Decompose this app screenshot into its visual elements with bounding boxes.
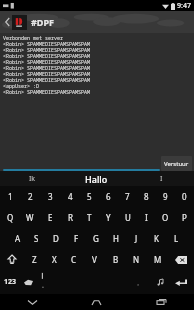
staticText: 4 bbox=[68, 191, 73, 202]
button[interactable]: J bbox=[126, 228, 146, 249]
staticText: I bbox=[160, 174, 163, 184]
staticText: <Robin> SPAMMEDIESPAMSPAMSPAM bbox=[3, 53, 91, 59]
button[interactable]: Backspace bbox=[168, 249, 194, 270]
staticText: 8 bbox=[144, 191, 149, 202]
staticText: 5 bbox=[87, 191, 92, 202]
staticText: N bbox=[133, 254, 140, 265]
staticText: 1 bbox=[8, 191, 13, 202]
staticText: 9:47 bbox=[177, 1, 191, 11]
button[interactable]: P bbox=[175, 207, 194, 228]
button[interactable]: Hallo bbox=[64, 171, 129, 186]
staticText: O bbox=[162, 212, 169, 223]
staticText: 123 bbox=[4, 277, 17, 287]
button[interactable]: Back bbox=[0, 294, 64, 310]
button[interactable]: Switch input method bbox=[20, 270, 36, 294]
button[interactable]: Recent apps bbox=[129, 294, 194, 310]
button[interactable]: R bbox=[60, 207, 80, 228]
button[interactable]: L bbox=[166, 228, 186, 249]
button[interactable]: Enter bbox=[168, 270, 194, 294]
staticText: 0 bbox=[182, 191, 187, 202]
button[interactable] bbox=[4, 153, 159, 171]
staticText: <Robin> SPAMMEDIESPAMSPAMSPAM bbox=[3, 71, 91, 77]
staticText: 3 bbox=[48, 191, 53, 202]
staticText: U bbox=[125, 212, 131, 223]
staticText: <Robin> SPAMMEDIESPAMSPAMSPAM bbox=[3, 59, 91, 65]
button[interactable]: 3 bbox=[40, 186, 60, 207]
staticText: L bbox=[174, 233, 179, 244]
button[interactable]: Y bbox=[99, 207, 118, 228]
button[interactable]: X bbox=[44, 249, 64, 270]
staticText: T bbox=[87, 212, 92, 223]
staticText: Y bbox=[106, 212, 111, 223]
button[interactable]: I bbox=[129, 171, 194, 186]
button[interactable]: F bbox=[66, 228, 86, 249]
button[interactable]: 8 bbox=[137, 186, 156, 207]
staticText: H bbox=[113, 233, 119, 244]
button[interactable]: N bbox=[126, 249, 147, 270]
button[interactable]: G bbox=[86, 228, 106, 249]
button[interactable]: D bbox=[46, 228, 66, 249]
button[interactable]: T bbox=[80, 207, 99, 228]
button[interactable]: 6 bbox=[99, 186, 118, 207]
staticText: C bbox=[71, 254, 77, 265]
button[interactable]: 1 bbox=[0, 186, 20, 207]
staticText: <Robin> SPAMMEDIESPAMSPAMSPAM bbox=[3, 47, 91, 53]
button[interactable]: Back bbox=[2, 11, 12, 33]
staticText: X bbox=[52, 254, 57, 265]
button[interactable]: V bbox=[84, 249, 105, 270]
button[interactable]: Emoji bbox=[152, 270, 168, 294]
staticText: <Robin> SPAMMEDIESPAMSPAMSPAM bbox=[3, 41, 91, 47]
button[interactable]: O bbox=[156, 207, 175, 228]
staticText: Q bbox=[7, 212, 14, 223]
button[interactable]: 4 bbox=[60, 186, 80, 207]
button[interactable]: 123 bbox=[0, 270, 20, 294]
button[interactable]: 5 bbox=[80, 186, 99, 207]
staticText: 9 bbox=[163, 191, 168, 202]
button[interactable]: I bbox=[137, 207, 156, 228]
staticText: J bbox=[135, 233, 138, 244]
button[interactable]: 7 bbox=[118, 186, 137, 207]
staticText: Z bbox=[32, 254, 37, 265]
staticText: D bbox=[53, 233, 59, 244]
button[interactable]: B bbox=[105, 249, 126, 270]
button[interactable]: M bbox=[147, 249, 168, 270]
staticText: S bbox=[34, 233, 39, 244]
staticText: K bbox=[154, 233, 159, 244]
button[interactable]: W bbox=[20, 207, 40, 228]
button[interactable]: E bbox=[40, 207, 60, 228]
staticText: <Robin> SPAMMEDIESPAMSPAMSPAM bbox=[3, 89, 91, 95]
staticText: P bbox=[182, 212, 187, 223]
staticText: W bbox=[26, 212, 34, 223]
staticText: <Robin> SPAMMEDIESPAMSPAMSPAM bbox=[3, 65, 91, 71]
button[interactable]: Space bbox=[36, 270, 152, 294]
staticText: #DPF bbox=[31, 16, 54, 28]
staticText: 2 bbox=[28, 191, 33, 202]
button[interactable]: U bbox=[118, 207, 137, 228]
staticText: V bbox=[92, 254, 97, 265]
button[interactable]: 9 bbox=[156, 186, 175, 207]
button[interactable]: Home bbox=[64, 294, 129, 310]
button[interactable]: Verstuur bbox=[161, 156, 192, 171]
button[interactable]: Ik bbox=[0, 171, 64, 186]
staticText: M bbox=[154, 254, 162, 265]
staticText: F bbox=[74, 233, 79, 244]
staticText: Ik bbox=[29, 174, 36, 184]
button[interactable]: 2 bbox=[20, 186, 40, 207]
button[interactable]: Shift bbox=[0, 249, 24, 270]
button[interactable]: S bbox=[27, 228, 46, 249]
staticText: G bbox=[93, 233, 99, 244]
staticText: A bbox=[15, 233, 21, 244]
staticText: E bbox=[48, 212, 53, 223]
staticText: 7 bbox=[125, 191, 130, 202]
staticText: <Robin> SPAMMEDIESPAMSPAMSPAM bbox=[3, 77, 91, 83]
button[interactable]: C bbox=[64, 249, 84, 270]
button[interactable]: H bbox=[106, 228, 126, 249]
button[interactable]: Q bbox=[0, 207, 20, 228]
staticText: B bbox=[113, 254, 119, 265]
button[interactable]: Z bbox=[24, 249, 44, 270]
staticText: Hallo bbox=[85, 173, 108, 185]
button[interactable]: K bbox=[146, 228, 166, 249]
button[interactable]: 0 bbox=[175, 186, 194, 207]
button[interactable]: A bbox=[8, 228, 27, 249]
staticText: R bbox=[68, 212, 73, 223]
